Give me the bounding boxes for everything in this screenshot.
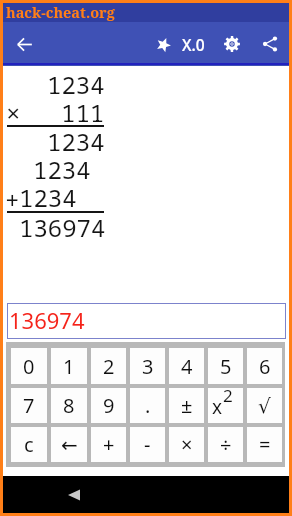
button[interactable]: Back (52, 476, 96, 513)
button[interactable]: 4 (169, 348, 204, 384)
staticText: 6 (259, 353, 271, 380)
button[interactable]: √ (247, 388, 282, 423)
button[interactable]: c (11, 427, 47, 462)
staticText: x (212, 394, 223, 418)
staticText: 136974 (9, 305, 85, 335)
button[interactable]: = (247, 427, 282, 462)
staticText: 2 (223, 384, 233, 407)
button[interactable]: - (130, 427, 165, 462)
button[interactable]: . (130, 388, 165, 423)
button[interactable]: Back (4, 24, 44, 64)
staticText: 136974 (19, 211, 106, 244)
staticText: + (103, 431, 115, 458)
button[interactable]: 0 (11, 348, 47, 384)
staticText: 8 (63, 392, 75, 419)
button[interactable]: x (208, 388, 243, 423)
staticText: = (259, 431, 271, 458)
staticText: c (24, 431, 34, 458)
staticText: 1234 (33, 153, 91, 186)
button[interactable]: 9 (91, 388, 126, 423)
button[interactable]: 6 (247, 348, 282, 384)
staticText: X.0 (182, 34, 205, 55)
button[interactable]: 136974 (8, 304, 285, 338)
button[interactable]: Settings (215, 27, 249, 61)
button[interactable]: + (91, 427, 126, 462)
button[interactable]: hack-cheat.org (6, 2, 115, 22)
button[interactable]: ← (51, 427, 87, 462)
button[interactable]: X.0 (151, 28, 209, 60)
staticText: ÷ (220, 431, 232, 458)
staticText: 0 (23, 353, 35, 380)
staticText: 1234 (47, 125, 105, 158)
staticText: 1234 (19, 181, 77, 214)
staticText: - (144, 431, 151, 458)
staticText: 3 (142, 353, 154, 380)
staticText: ± (181, 392, 193, 419)
staticText: × (6, 96, 21, 129)
button[interactable]: ÷ (208, 427, 243, 462)
button[interactable]: 5 (208, 348, 243, 384)
staticText: 7 (23, 392, 35, 419)
staticText: 2 (103, 353, 115, 380)
button[interactable]: 7 (11, 388, 47, 423)
staticText: × (181, 431, 193, 458)
staticText: hack-cheat.org (6, 2, 115, 22)
button[interactable]: 1 (51, 348, 87, 384)
staticText: 111 (61, 96, 105, 129)
staticText: + (5, 183, 20, 216)
button[interactable]: × (169, 427, 204, 462)
staticText: 9 (103, 392, 115, 419)
staticText: 4 (181, 353, 193, 380)
button[interactable]: 2 (91, 348, 126, 384)
staticText: 5 (220, 353, 232, 380)
staticText: 1 (63, 353, 75, 380)
staticText: √ (258, 394, 271, 417)
staticText: ← (61, 433, 78, 456)
button[interactable]: Share (253, 27, 287, 61)
staticText: . (145, 392, 151, 419)
button[interactable]: 3 (130, 348, 165, 384)
staticText: 1234 (47, 68, 105, 101)
button[interactable]: ± (169, 388, 204, 423)
button[interactable]: 8 (51, 388, 87, 423)
